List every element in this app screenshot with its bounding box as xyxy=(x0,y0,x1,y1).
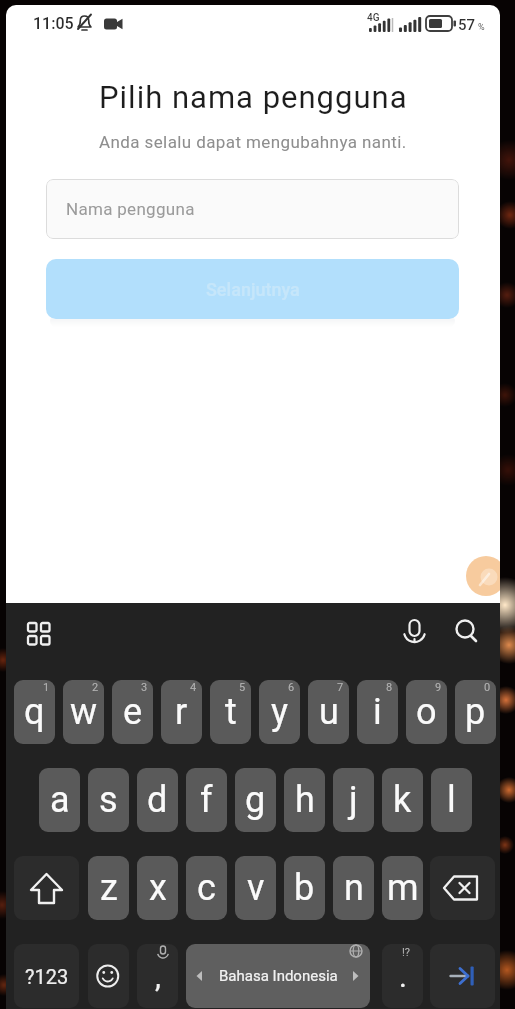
button[interactable]: Selanjutnya xyxy=(46,259,459,319)
button[interactable]: Bahasa Indonesia xyxy=(186,944,370,1008)
button[interactable] xyxy=(88,944,129,1008)
button[interactable]: ?123 xyxy=(14,944,79,1008)
staticText: a xyxy=(50,779,70,821)
staticText: 1 xyxy=(43,681,50,694)
button[interactable] xyxy=(20,615,56,651)
button[interactable]: y xyxy=(259,680,300,744)
staticText: 11:05 xyxy=(33,14,74,33)
button[interactable]: s xyxy=(88,768,129,832)
staticText: o xyxy=(416,691,437,733)
staticText: p xyxy=(465,691,486,733)
staticText: 4G xyxy=(367,12,380,24)
staticText: y xyxy=(271,691,289,733)
staticText: 5 xyxy=(239,681,246,694)
button[interactable]: l xyxy=(431,768,472,832)
staticText: b xyxy=(294,867,315,909)
button[interactable]: c xyxy=(186,856,227,920)
button[interactable]: u xyxy=(308,680,349,744)
staticText: l xyxy=(447,779,456,821)
staticText: 57 xyxy=(458,16,476,34)
staticText: k xyxy=(393,779,412,821)
button[interactable]: Nama pengguna xyxy=(46,179,459,239)
staticText: Pilih nama pengguna xyxy=(99,79,408,115)
button[interactable] xyxy=(430,944,495,1008)
staticText: n xyxy=(344,867,364,909)
button[interactable]: n xyxy=(333,856,374,920)
staticText: q xyxy=(24,691,45,733)
staticText: 3 xyxy=(141,681,148,694)
button[interactable]: h xyxy=(284,768,325,832)
staticText: 7 xyxy=(337,681,344,694)
button[interactable] xyxy=(448,615,484,651)
staticText: 9 xyxy=(435,681,442,694)
button[interactable]: o xyxy=(406,680,447,744)
button[interactable] xyxy=(466,556,500,596)
staticText: 4 xyxy=(190,681,197,694)
button[interactable]: x xyxy=(137,856,178,920)
staticText: . xyxy=(399,959,407,994)
staticText: 0 xyxy=(484,681,491,694)
button[interactable]: t xyxy=(210,680,251,744)
staticText: 2 xyxy=(92,681,99,694)
button[interactable]: i xyxy=(357,680,398,744)
staticText: c xyxy=(197,867,216,909)
button[interactable]: . xyxy=(382,944,423,1008)
button[interactable]: w xyxy=(63,680,104,744)
staticText: u xyxy=(319,691,339,733)
staticText: e xyxy=(123,691,143,733)
staticText: , xyxy=(155,959,161,994)
staticText: f xyxy=(200,779,213,821)
staticText: Anda selalu dapat mengubahnya nanti. xyxy=(99,132,407,152)
button[interactable]: m xyxy=(382,856,423,920)
button[interactable]: j xyxy=(333,768,374,832)
button[interactable]: a xyxy=(39,768,80,832)
button[interactable]: r xyxy=(161,680,202,744)
button[interactable]: z xyxy=(88,856,129,920)
staticText: 8 xyxy=(386,681,393,694)
staticText: ?123 xyxy=(25,965,69,988)
button[interactable]: b xyxy=(284,856,325,920)
staticText: g xyxy=(245,779,266,821)
staticText: m xyxy=(387,867,419,909)
button[interactable]: p xyxy=(455,680,496,744)
button[interactable]: f xyxy=(186,768,227,832)
staticText: Nama pengguna xyxy=(66,199,195,219)
staticText: v xyxy=(247,867,265,909)
staticText: d xyxy=(147,779,168,821)
button[interactable] xyxy=(430,856,495,920)
button[interactable]: g xyxy=(235,768,276,832)
staticText: z xyxy=(100,867,118,909)
staticText: Bahasa Indonesia xyxy=(219,967,338,985)
button[interactable]: d xyxy=(137,768,178,832)
staticText: % xyxy=(478,22,485,33)
button[interactable]: , xyxy=(137,944,178,1008)
staticText: w xyxy=(70,691,98,733)
staticText: !? xyxy=(402,946,411,959)
button[interactable]: q xyxy=(14,680,55,744)
button[interactable]: v xyxy=(235,856,276,920)
staticText: t xyxy=(225,691,237,733)
staticText: Selanjutnya xyxy=(206,279,300,300)
staticText: h xyxy=(295,779,315,821)
staticText: j xyxy=(349,779,358,821)
staticText: i xyxy=(373,691,382,733)
staticText: r xyxy=(175,691,188,733)
staticText: 6 xyxy=(288,681,295,694)
staticText: s xyxy=(99,779,118,821)
button[interactable]: e xyxy=(112,680,153,744)
button[interactable] xyxy=(14,856,79,920)
staticText: x xyxy=(149,867,167,909)
button[interactable] xyxy=(397,615,433,651)
button[interactable]: k xyxy=(382,768,423,832)
